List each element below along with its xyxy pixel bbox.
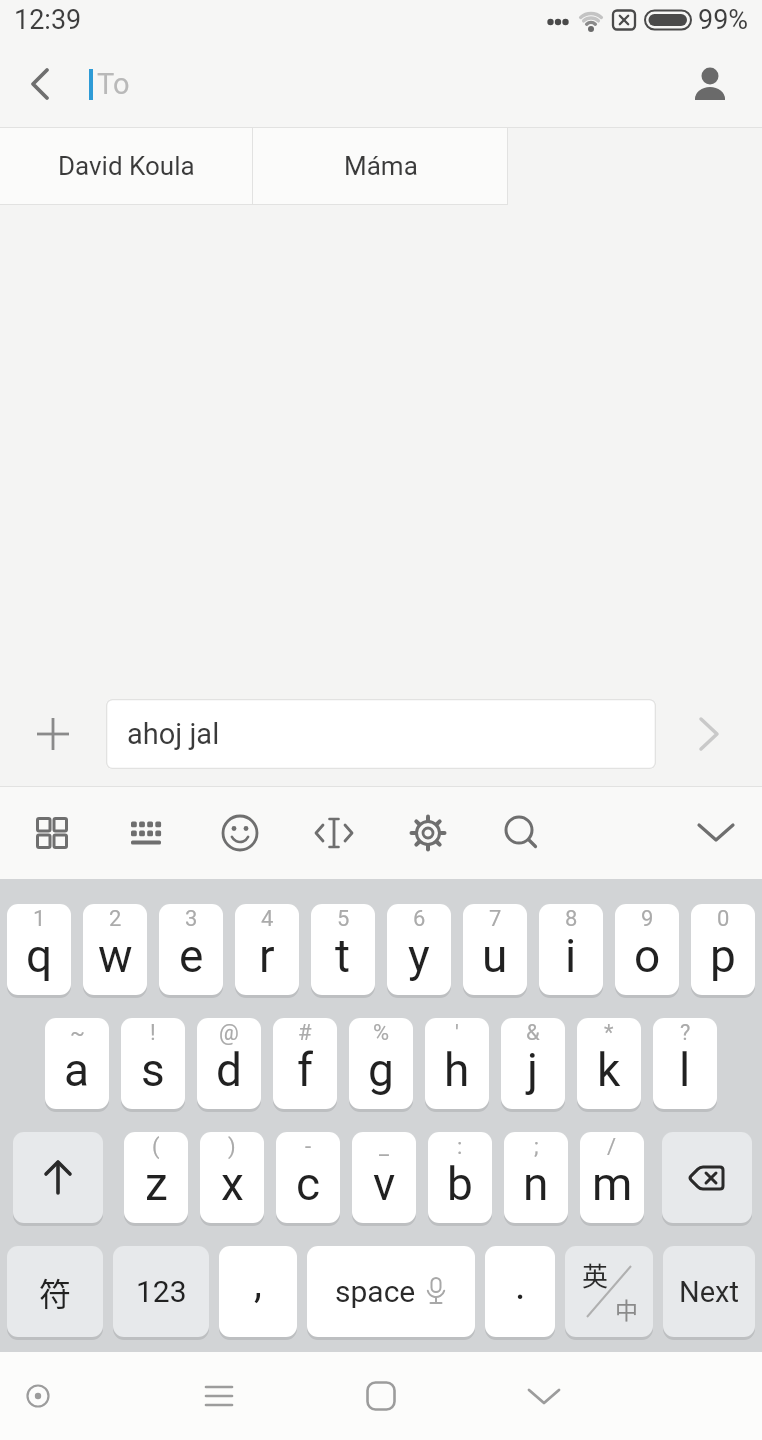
button[interactable]: 4 [235,904,299,998]
staticText: l [679,1043,691,1097]
staticText: a [64,1043,90,1097]
staticText: 1 [33,906,46,932]
button[interactable] [662,1132,752,1226]
button[interactable]: ; [504,1132,568,1226]
button[interactable]: . [485,1246,555,1340]
button[interactable]: ? [653,1018,717,1112]
button[interactable]: 符 [7,1246,103,1340]
staticText: v [373,1157,396,1211]
button[interactable]: % [349,1018,413,1112]
button[interactable] [670,786,762,879]
staticText: ) [228,1134,236,1160]
staticText: 3 [185,906,198,932]
staticText: n [523,1157,549,1211]
staticText: w [98,929,133,983]
button[interactable]: # [273,1018,337,1112]
staticText: g [368,1043,394,1097]
button[interactable] [5,786,99,879]
button[interactable] [8,1366,68,1426]
button[interactable]: ) [200,1132,264,1226]
button[interactable] [189,1366,249,1426]
staticText: b [447,1157,473,1211]
button[interactable]: Máma [253,127,508,205]
staticText: / [607,1134,617,1160]
staticText: o [634,929,661,983]
button[interactable] [514,1366,574,1426]
button[interactable]: / [580,1132,644,1226]
button[interactable]: Next [663,1246,755,1340]
button[interactable]: 8 [539,904,603,998]
button[interactable]: ( [124,1132,188,1226]
button[interactable] [475,786,569,879]
button[interactable]: 英 [565,1246,653,1340]
staticText: s [141,1043,165,1097]
button[interactable]: ! [121,1018,185,1112]
button[interactable]: _ [352,1132,416,1226]
staticText: x [221,1157,244,1211]
staticText: y [408,929,430,983]
staticText: 6 [413,906,426,932]
button[interactable]: David Koula [0,127,253,205]
staticText: : [457,1134,463,1160]
button[interactable]: @ [197,1018,261,1112]
staticText: q [26,929,53,983]
staticText: . [515,1262,526,1309]
button[interactable]: : [428,1132,492,1226]
staticText: 英 [582,1256,609,1294]
staticText: @ [219,1020,239,1046]
staticText: 9 [641,906,654,932]
staticText: % [373,1020,390,1046]
staticText: 8 [565,906,578,932]
staticText: _ [379,1134,389,1160]
button[interactable]: 5 [311,904,375,998]
staticText: ( [152,1134,160,1160]
staticText: ' [455,1020,459,1046]
staticText: 4 [261,906,274,932]
button[interactable] [99,786,193,879]
staticText: 0 [717,906,730,932]
button[interactable] [287,786,381,879]
staticText: ! [150,1020,156,1046]
button[interactable]: * [577,1018,641,1112]
button[interactable]: 0 [691,904,755,998]
button[interactable]: 7 [463,904,527,998]
staticText: f [297,1043,313,1097]
staticText: 符 [39,1269,72,1315]
staticText: 5 [337,906,350,932]
button[interactable] [686,711,732,757]
button[interactable]: 123 [113,1246,209,1340]
button[interactable]: , [219,1246,297,1340]
button[interactable]: 2 [83,904,147,998]
button[interactable]: 6 [387,904,451,998]
staticText: m [592,1157,633,1211]
staticText: i [565,929,577,983]
button[interactable] [16,60,64,108]
staticText: k [597,1043,621,1097]
button[interactable]: & [501,1018,565,1112]
staticText: ~ [70,1020,85,1046]
button[interactable]: space [307,1246,475,1340]
button[interactable] [13,1132,103,1226]
staticText: 中 [615,1292,638,1325]
button[interactable]: - [276,1132,340,1226]
staticText: - [305,1134,312,1160]
button[interactable]: ahoj jal [106,699,656,769]
button[interactable]: 1 [7,904,71,998]
button[interactable]: 3 [159,904,223,998]
staticText: # [298,1020,312,1046]
staticText: Next [679,1275,739,1309]
button[interactable]: 9 [615,904,679,998]
staticText: j [527,1043,539,1097]
button[interactable]: ~ [45,1018,109,1112]
button[interactable] [30,711,76,757]
staticText: & [526,1020,540,1046]
button[interactable] [381,786,475,879]
button[interactable]: ' [425,1018,489,1112]
staticText: ; [534,1134,539,1160]
button[interactable] [193,786,287,879]
staticText: e [179,929,204,983]
button[interactable] [351,1366,411,1426]
staticText: u [482,929,508,983]
staticText: p [710,929,736,983]
button[interactable] [686,60,734,108]
